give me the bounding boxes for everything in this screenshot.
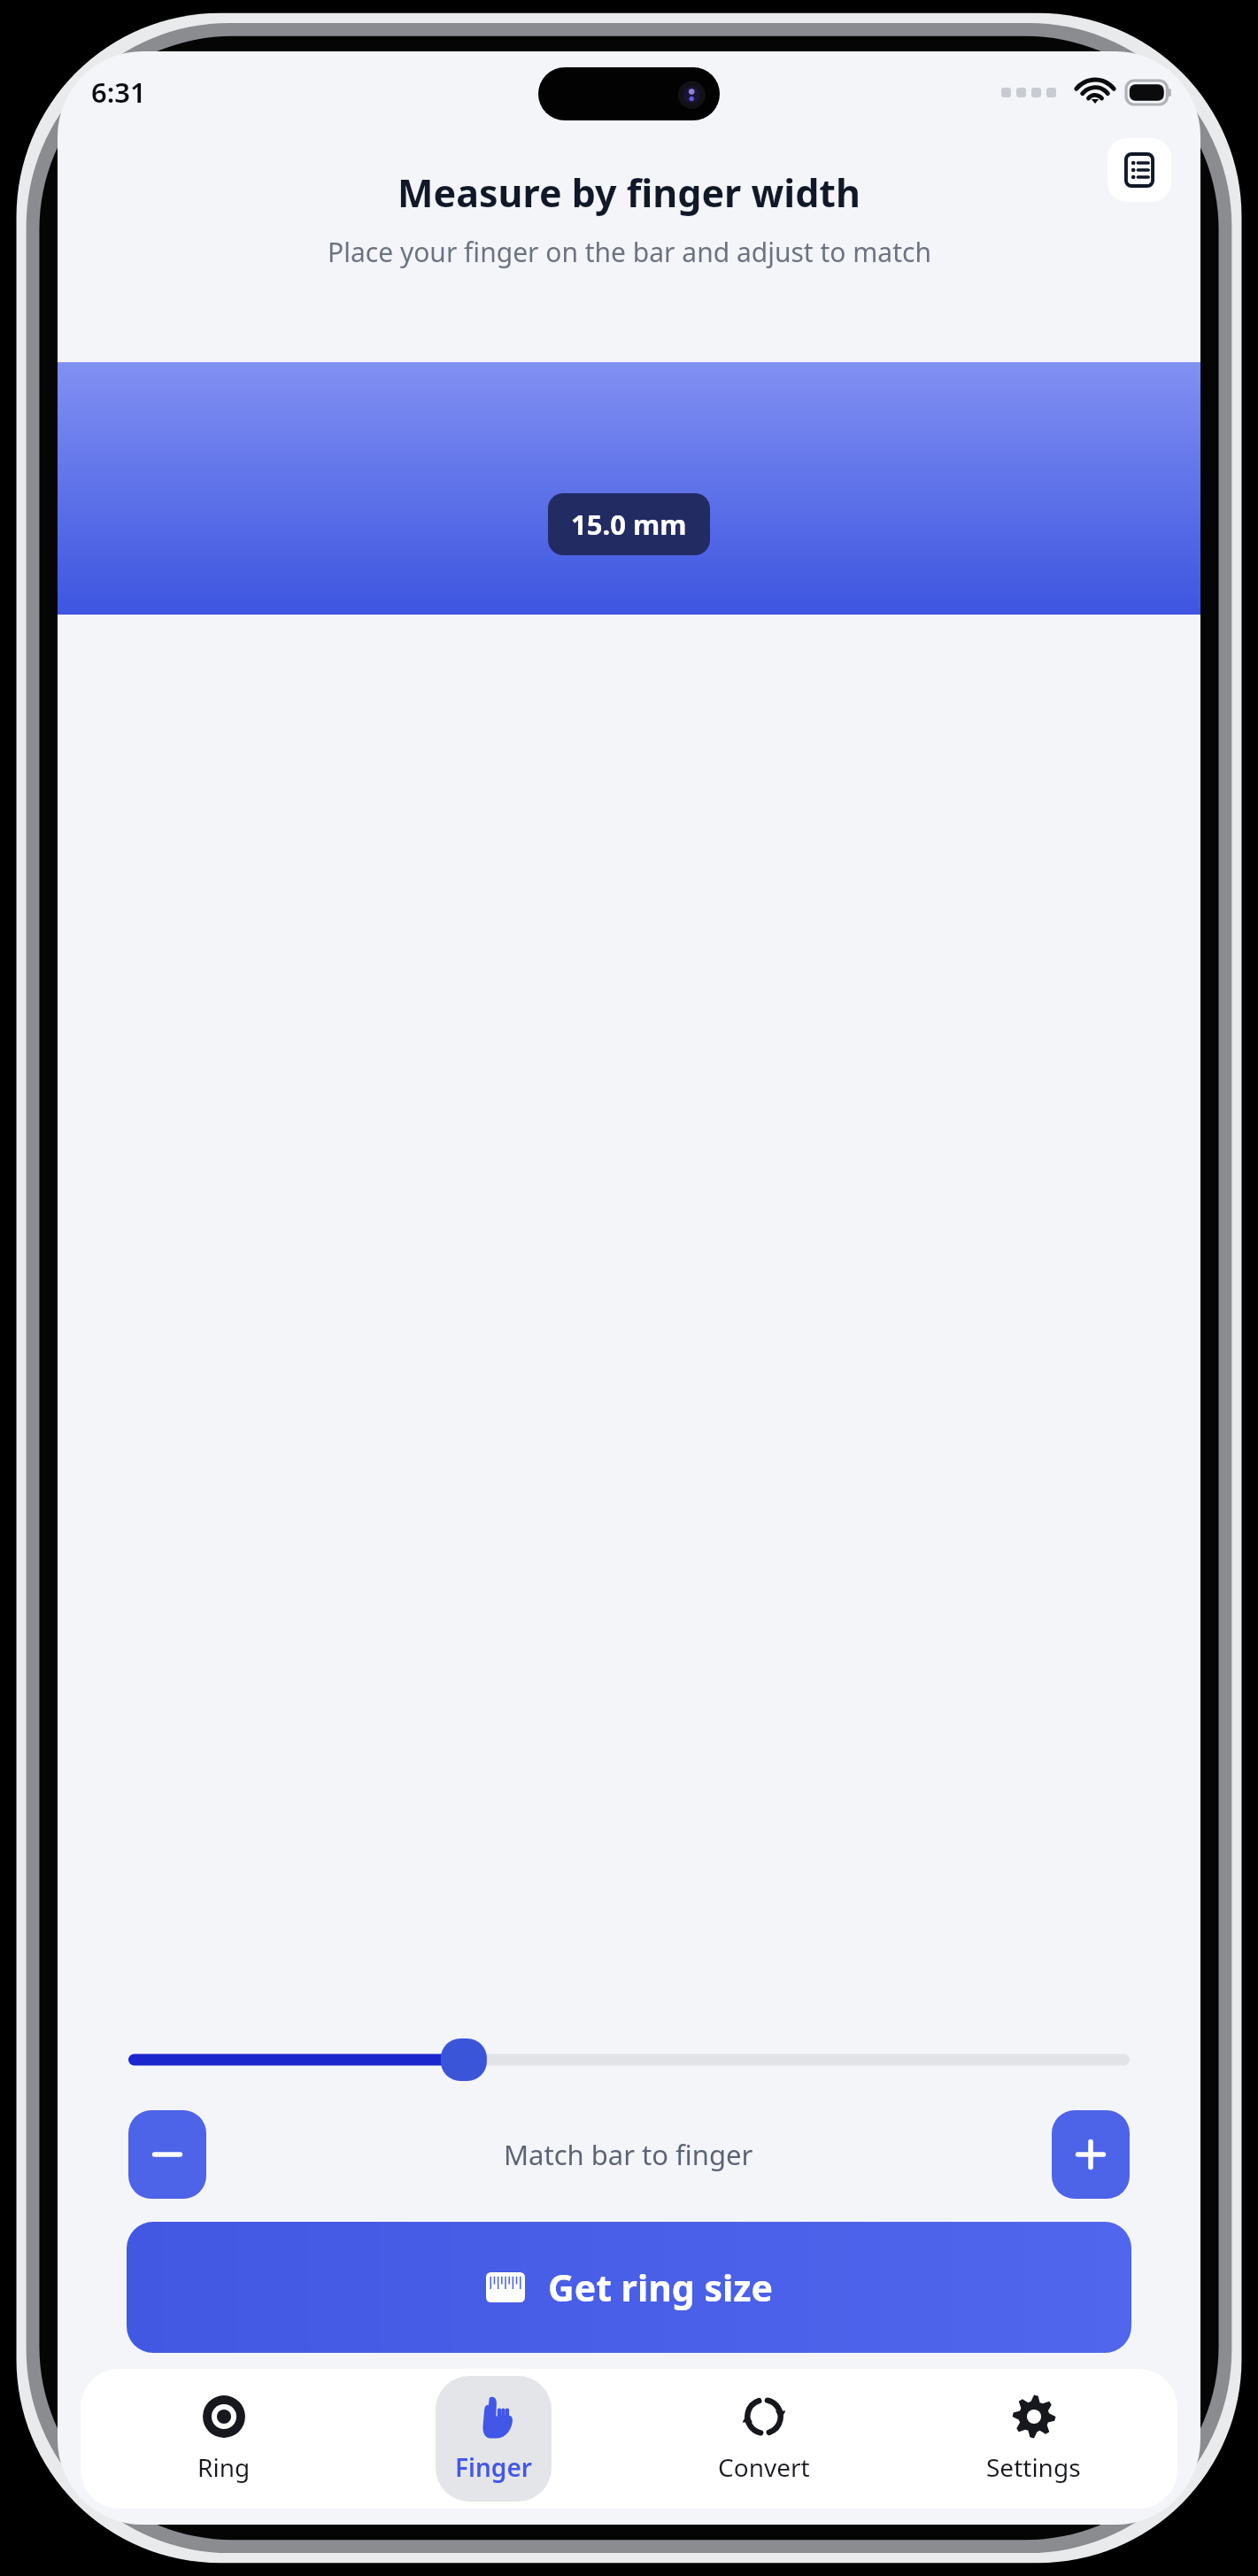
staticText: Get ring size: [548, 2263, 773, 2312]
button[interactable]: Get ring size: [127, 2222, 1131, 2353]
staticText: Convert: [718, 2450, 810, 2484]
button[interactable]: Ring: [178, 2376, 270, 2502]
button[interactable]: Settings: [967, 2376, 1100, 2502]
button[interactable]: Convert: [698, 2376, 830, 2502]
staticText: 15.0 mm: [571, 506, 687, 543]
button[interactable]: Size chart: [1108, 138, 1171, 202]
button[interactable]: Measuring bar: [58, 362, 1200, 615]
staticText: Settings: [986, 2450, 1081, 2484]
staticText: 6:31: [91, 73, 146, 111]
staticText: Match bar to finger: [504, 2136, 753, 2173]
staticText: Place your finger on the bar and adjust …: [328, 234, 931, 270]
button[interactable]: Finger: [436, 2376, 552, 2502]
staticText: Ring: [197, 2450, 251, 2484]
staticText: Finger: [455, 2450, 532, 2484]
button[interactable]: Increase: [1052, 2110, 1130, 2199]
button[interactable]: Decrease: [128, 2110, 206, 2199]
staticText: Measure by finger width: [397, 166, 861, 219]
button[interactable]: Width slider: [128, 2029, 1130, 2091]
